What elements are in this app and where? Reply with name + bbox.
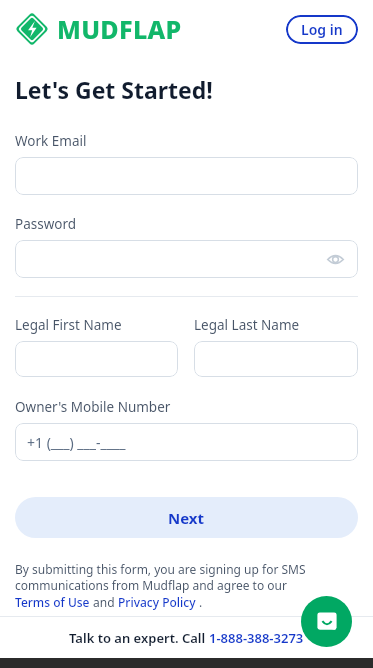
button[interactable]: +1 (___) ___-____ xyxy=(15,423,358,461)
button[interactable]: MUDFLAP xyxy=(15,12,182,46)
staticText: and xyxy=(90,594,118,610)
button[interactable]: 1-888-388-3273 xyxy=(209,629,304,647)
staticText: Terms of Use xyxy=(15,594,90,610)
button[interactable]: Show password xyxy=(15,240,358,278)
button[interactable]: Privacy Policy xyxy=(118,594,196,610)
button[interactable] xyxy=(194,341,358,377)
staticText: Privacy Policy xyxy=(118,594,196,610)
staticText: Work Email xyxy=(15,132,87,150)
button[interactable]: Show password xyxy=(324,248,346,270)
staticText: Password xyxy=(15,215,77,233)
button[interactable]: Log in xyxy=(286,15,358,44)
staticText: Talk to an expert. Call xyxy=(69,629,209,647)
staticText: By submitting this form, you are signing… xyxy=(15,561,306,594)
staticText: Next xyxy=(168,508,205,528)
button[interactable]: Next xyxy=(15,497,358,538)
staticText: Let's Get Started! xyxy=(15,74,213,105)
staticText: 1-888-388-3273 xyxy=(209,629,304,647)
staticText: Log in xyxy=(301,20,343,39)
button[interactable]: Open chat with support xyxy=(301,596,352,647)
button[interactable]: Terms of Use xyxy=(15,594,90,610)
staticText: Legal First Name xyxy=(15,316,122,334)
button[interactable] xyxy=(15,341,178,377)
button[interactable] xyxy=(15,157,358,195)
staticText: Legal Last Name xyxy=(194,316,300,334)
staticText: +1 (___) ___-____ xyxy=(27,433,126,452)
staticText: Owner's Mobile Number xyxy=(15,398,171,416)
staticText: . xyxy=(196,594,203,610)
staticText: MUDFLAP xyxy=(57,12,182,46)
